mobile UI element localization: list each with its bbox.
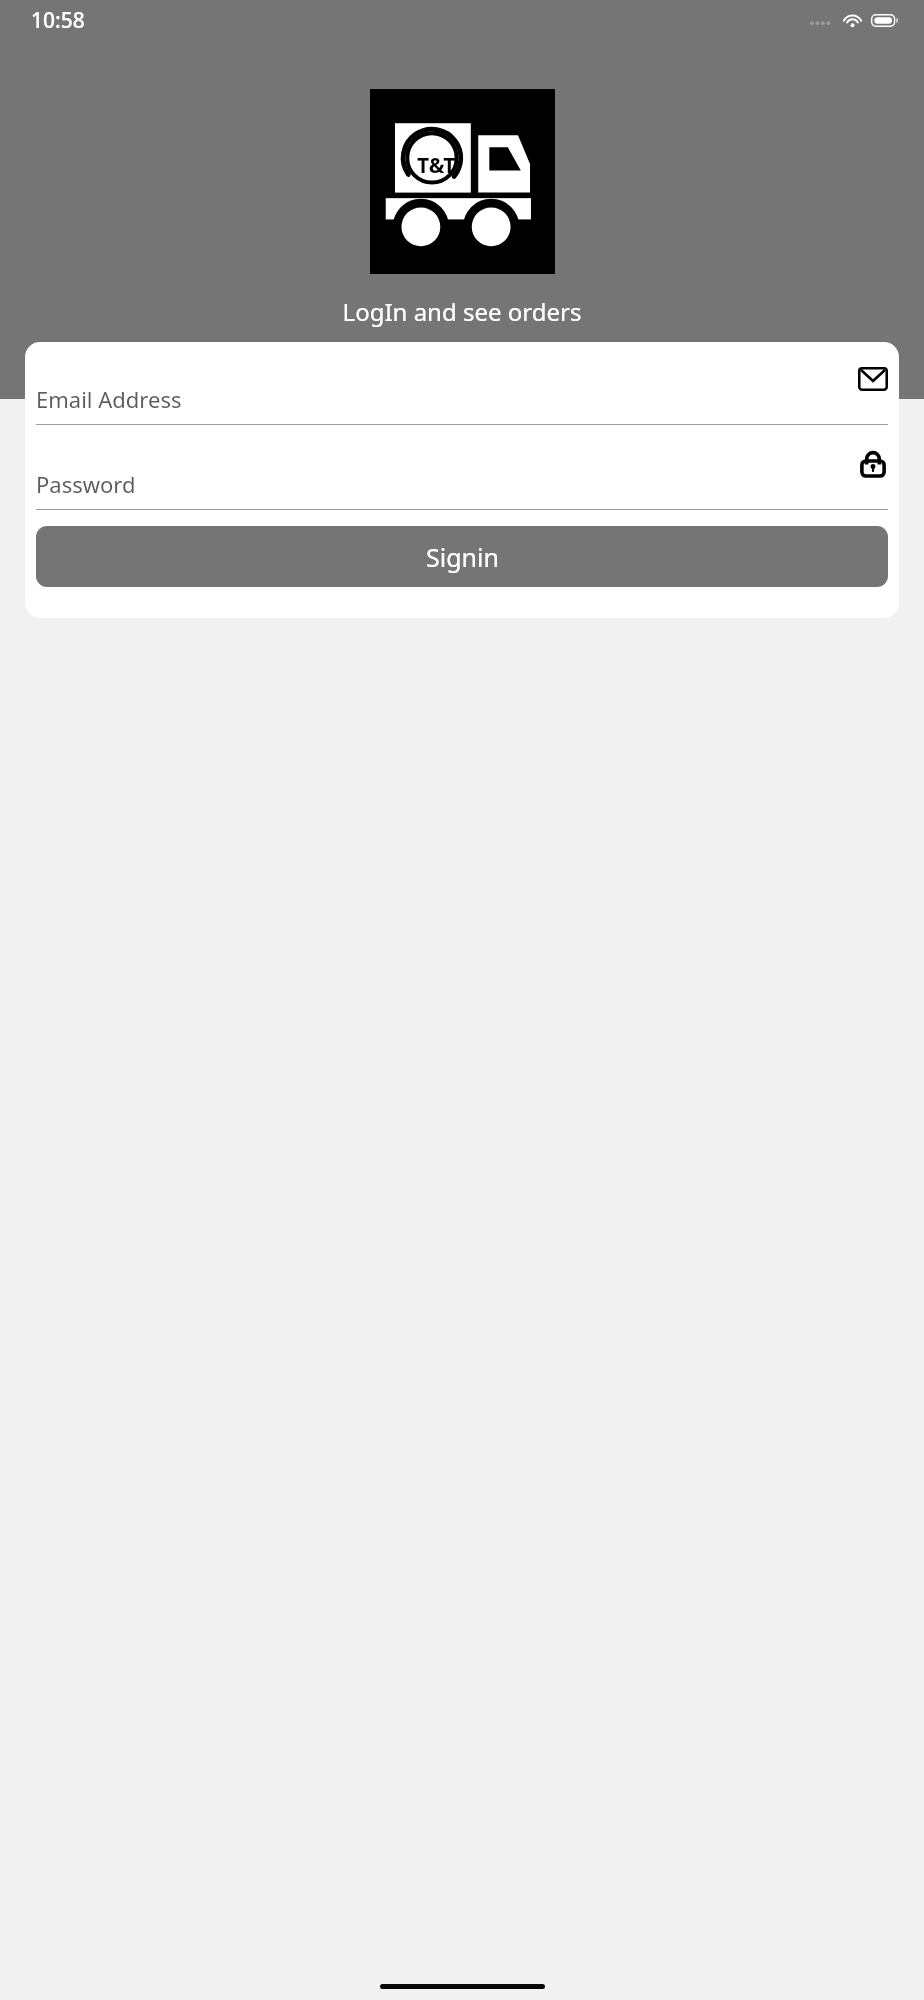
staticText: Signin [426, 540, 499, 574]
other: Email [858, 364, 888, 394]
staticText: Email Address [36, 384, 182, 414]
button[interactable]: Password [36, 447, 888, 510]
staticText: LogIn and see orders [0, 295, 924, 328]
button[interactable]: Email [36, 362, 888, 425]
button[interactable]: Signin [36, 526, 888, 587]
staticText: Password [36, 469, 136, 499]
staticText: 10:58 [31, 6, 85, 35]
staticText: T&T [417, 151, 456, 180]
other: Password [858, 449, 888, 479]
